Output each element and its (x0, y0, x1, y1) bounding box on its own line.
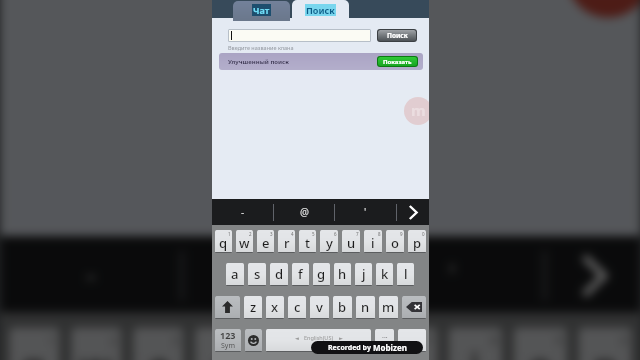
staticText: q (21, 339, 48, 360)
button[interactable]: Next field (397, 199, 429, 225)
button[interactable]: ' (335, 199, 396, 225)
staticText: c (294, 298, 301, 316)
button[interactable]: c (288, 296, 306, 318)
staticText: e (262, 234, 270, 252)
staticText: 3 (270, 231, 273, 237)
staticText: @ (300, 205, 309, 219)
button[interactable]: 8 (364, 230, 382, 252)
button[interactable] (229, 30, 370, 41)
staticText: 123 (220, 329, 236, 341)
button[interactable]: k (376, 263, 393, 285)
button[interactable]: Next field (546, 236, 640, 313)
button[interactable]: s (248, 263, 266, 285)
button[interactable]: 0 (408, 230, 426, 252)
staticText: b (338, 298, 347, 316)
staticText: m (382, 298, 395, 316)
button[interactable]: 123 (215, 329, 241, 351)
button[interactable]: Показать (378, 57, 417, 66)
staticText: w (80, 339, 113, 360)
button[interactable]: ' (363, 236, 543, 313)
staticText: v (316, 298, 323, 316)
button[interactable]: 5 (299, 230, 316, 252)
button[interactable]: Enter (398, 329, 426, 351)
button[interactable]: d (270, 263, 288, 285)
staticText: x (271, 298, 279, 316)
button[interactable]: x (266, 296, 284, 318)
button[interactable]: 9 (386, 230, 404, 252)
button[interactable]: 6 (320, 230, 338, 252)
button[interactable]: j (355, 263, 372, 285)
button[interactable]: z (244, 296, 262, 318)
button[interactable]: 3 (257, 230, 274, 252)
staticText: s (254, 265, 261, 283)
button[interactable]: b (333, 296, 352, 318)
staticText: n (361, 298, 370, 316)
staticText: English(US) (304, 334, 334, 341)
staticText: 6 (360, 330, 369, 348)
button[interactable]: Чат (233, 1, 290, 21)
staticText: k (381, 265, 389, 283)
button[interactable]: Поиск (292, 0, 349, 21)
button[interactable]: 2 (71, 327, 121, 360)
button[interactable]: 2 (236, 230, 253, 252)
button[interactable]: a (226, 263, 244, 285)
staticText: q (219, 234, 228, 252)
staticText: 6 (334, 231, 337, 237)
button[interactable]: 6 (319, 327, 372, 360)
staticText: 0 (620, 330, 629, 348)
staticText: Введите название клана (228, 44, 294, 51)
button[interactable]: 4 (195, 327, 245, 360)
staticText: t (275, 339, 290, 360)
button[interactable]: 5 (257, 327, 307, 360)
staticText: ... (382, 331, 388, 341)
button[interactable]: 3 (133, 327, 183, 360)
staticText: 7 (356, 231, 359, 237)
button[interactable]: l (397, 263, 414, 285)
staticText: ► (339, 335, 343, 341)
button[interactable]: Улучшенный поиск (219, 53, 423, 70)
button[interactable]: - (0, 236, 180, 313)
staticText: l (404, 265, 408, 283)
button[interactable]: 4 (278, 230, 295, 252)
staticText: Улучшенный поиск (228, 58, 289, 66)
button[interactable]: Shift (215, 296, 240, 318)
staticText: i (469, 339, 481, 360)
staticText: 3 (171, 330, 180, 348)
staticText: u (347, 234, 356, 252)
button[interactable]: h (334, 263, 351, 285)
button[interactable]: Backspace (402, 296, 426, 318)
staticText: 4 (233, 330, 242, 348)
staticText: 5 (295, 330, 304, 348)
staticText: d (275, 265, 284, 283)
button[interactable]: 9 (514, 327, 567, 360)
staticText: f (298, 265, 303, 283)
button[interactable]: Emoji (245, 329, 262, 351)
staticText: g (317, 265, 326, 283)
button[interactable]: v (310, 296, 329, 318)
button[interactable]: 7 (384, 327, 437, 360)
button[interactable]: 1 (9, 327, 59, 360)
button[interactable]: - (212, 199, 273, 225)
staticText: z (250, 298, 257, 316)
button[interactable]: @ (274, 199, 334, 225)
staticText: 9 (555, 330, 564, 348)
button[interactable]: ◄ (266, 329, 371, 351)
button[interactable]: m (379, 296, 398, 318)
button[interactable]: 1 (215, 230, 232, 252)
button[interactable]: g (313, 263, 330, 285)
button[interactable]: 0 (579, 327, 632, 360)
staticText: y (326, 234, 333, 252)
button[interactable]: 7 (342, 230, 360, 252)
button[interactable]: ... (375, 329, 394, 351)
staticText: i (371, 234, 375, 252)
button[interactable]: 8 (449, 327, 502, 360)
button[interactable]: n (356, 296, 375, 318)
button[interactable]: @ (183, 236, 360, 313)
button[interactable]: f (292, 263, 309, 285)
staticText: ◄ (295, 335, 299, 341)
button[interactable]: Поиск (378, 30, 416, 41)
staticText: p (593, 339, 620, 360)
